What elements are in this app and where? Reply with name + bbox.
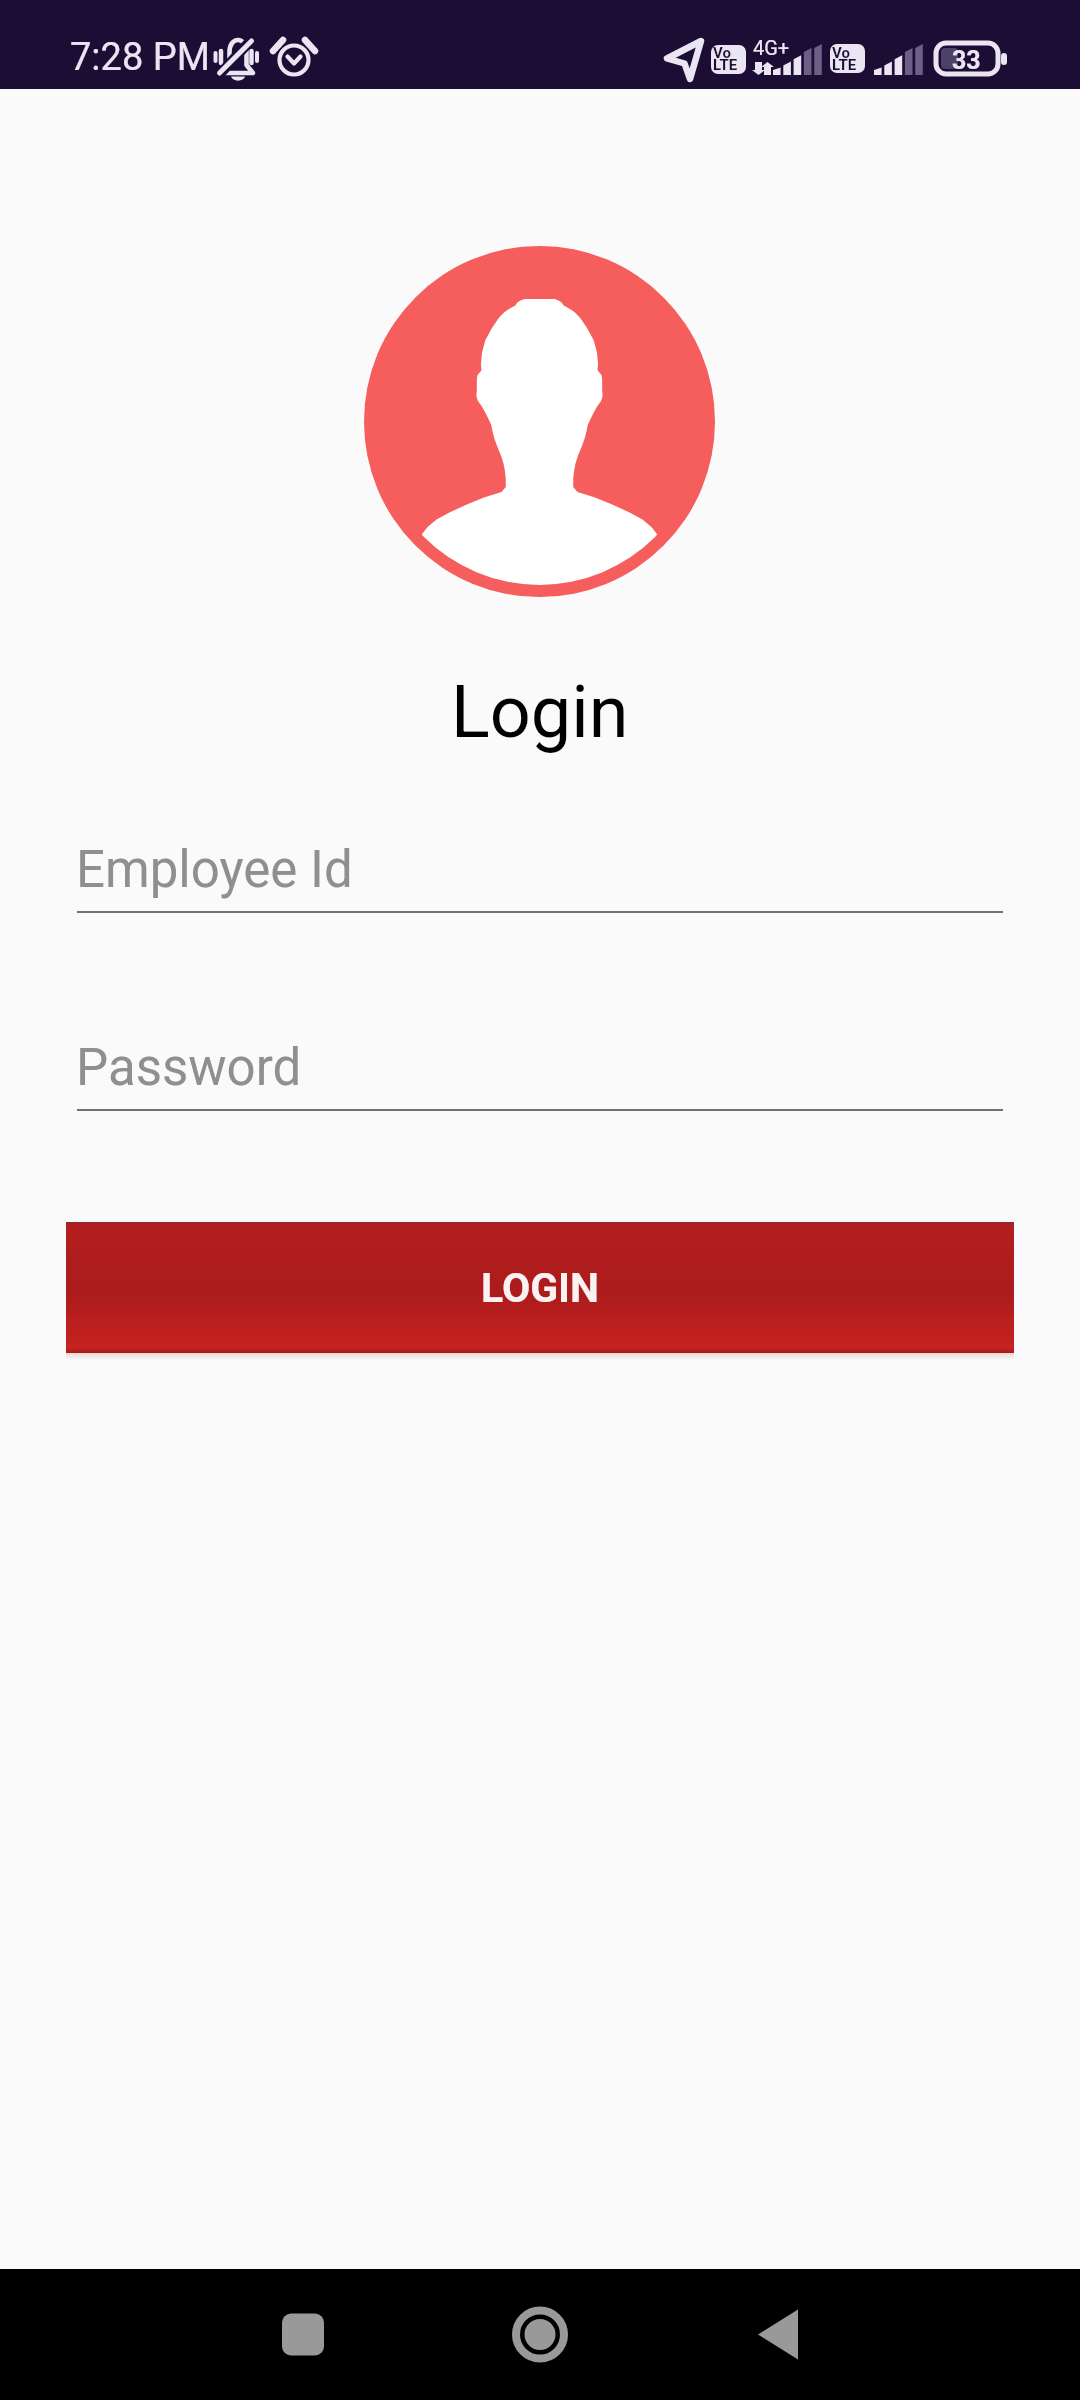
button[interactable]: Recent apps xyxy=(243,2269,363,2400)
staticText: 7:28 PM xyxy=(70,35,210,80)
staticText: 4G+ xyxy=(753,36,790,59)
button[interactable]: Back xyxy=(718,2269,838,2400)
button[interactable]: Home xyxy=(480,2269,600,2400)
staticText: LOGIN xyxy=(481,1264,600,1312)
staticText: Vo xyxy=(832,44,850,62)
staticText: Login xyxy=(451,670,629,754)
staticText: LTE xyxy=(713,56,738,74)
staticText: Employee Id xyxy=(76,840,353,900)
button[interactable]: Password xyxy=(77,1016,1003,1123)
button[interactable]: Employee Id xyxy=(77,818,1003,925)
staticText: 33 xyxy=(952,46,981,75)
button[interactable]: LOGIN xyxy=(66,1222,1014,1353)
staticText: Vo xyxy=(713,44,731,62)
staticText: LTE xyxy=(832,56,857,74)
staticText: Password xyxy=(76,1038,302,1098)
